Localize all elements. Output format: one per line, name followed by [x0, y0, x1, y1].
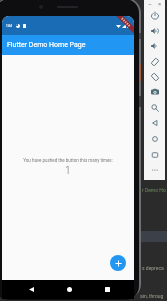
button[interactable]: Rotate left	[146, 53, 163, 70]
staticText: Flutter Demo Home Page	[7, 41, 86, 49]
staticText: r Demo Ho	[142, 187, 166, 193]
button[interactable]: Flutter Demo Home Page	[2, 35, 134, 55]
staticText: –	[148, 0, 152, 7]
button[interactable]: More	[146, 161, 163, 178]
button[interactable]: Volume up	[146, 22, 163, 39]
button[interactable]: Back	[23, 281, 39, 297]
staticText: ×	[158, 0, 162, 7]
button[interactable]: Power	[146, 7, 163, 24]
button[interactable]: Volume down	[146, 37, 163, 54]
button[interactable]: Home	[61, 281, 77, 297]
button[interactable]: Home	[146, 130, 163, 147]
staticText: You have pushed the button this many tim…	[23, 158, 113, 163]
staticText: 1:04	[6, 24, 12, 28]
staticText: s depreca	[142, 265, 164, 271]
staticText: ain, throug	[140, 293, 164, 299]
button[interactable]: Back	[146, 114, 163, 131]
button[interactable]: Zoom	[146, 99, 163, 116]
button[interactable]: Rotate right	[146, 68, 163, 85]
button[interactable]: Recent apps	[99, 281, 115, 297]
button[interactable]: Increment	[110, 255, 126, 271]
button[interactable]: Overview	[146, 146, 163, 163]
staticText: 1	[65, 165, 71, 177]
button[interactable]: Take screenshot	[146, 83, 163, 100]
